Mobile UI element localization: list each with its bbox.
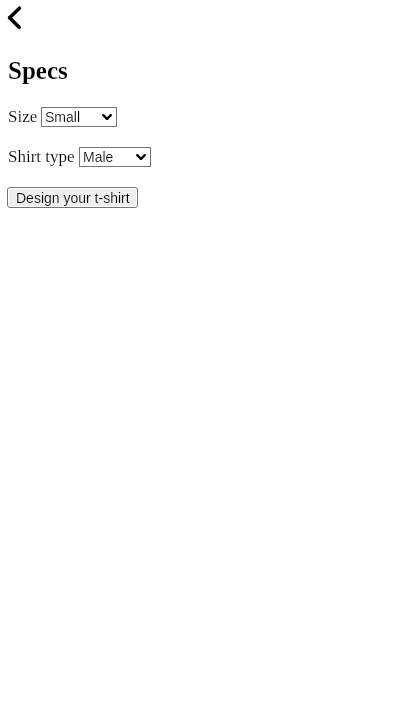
staticText: Design your t-shirt (16, 190, 130, 206)
staticText: Male (83, 149, 114, 165)
staticText: Small (45, 109, 81, 125)
staticText: Shirt type (8, 147, 75, 166)
button[interactable]: Small (41, 107, 117, 127)
staticText: Specs (8, 57, 68, 85)
button[interactable]: Male (79, 147, 151, 167)
button[interactable]: Back (3, 2, 33, 34)
staticText: Size (8, 107, 38, 126)
button[interactable]: Design your t-shirt (7, 187, 138, 208)
